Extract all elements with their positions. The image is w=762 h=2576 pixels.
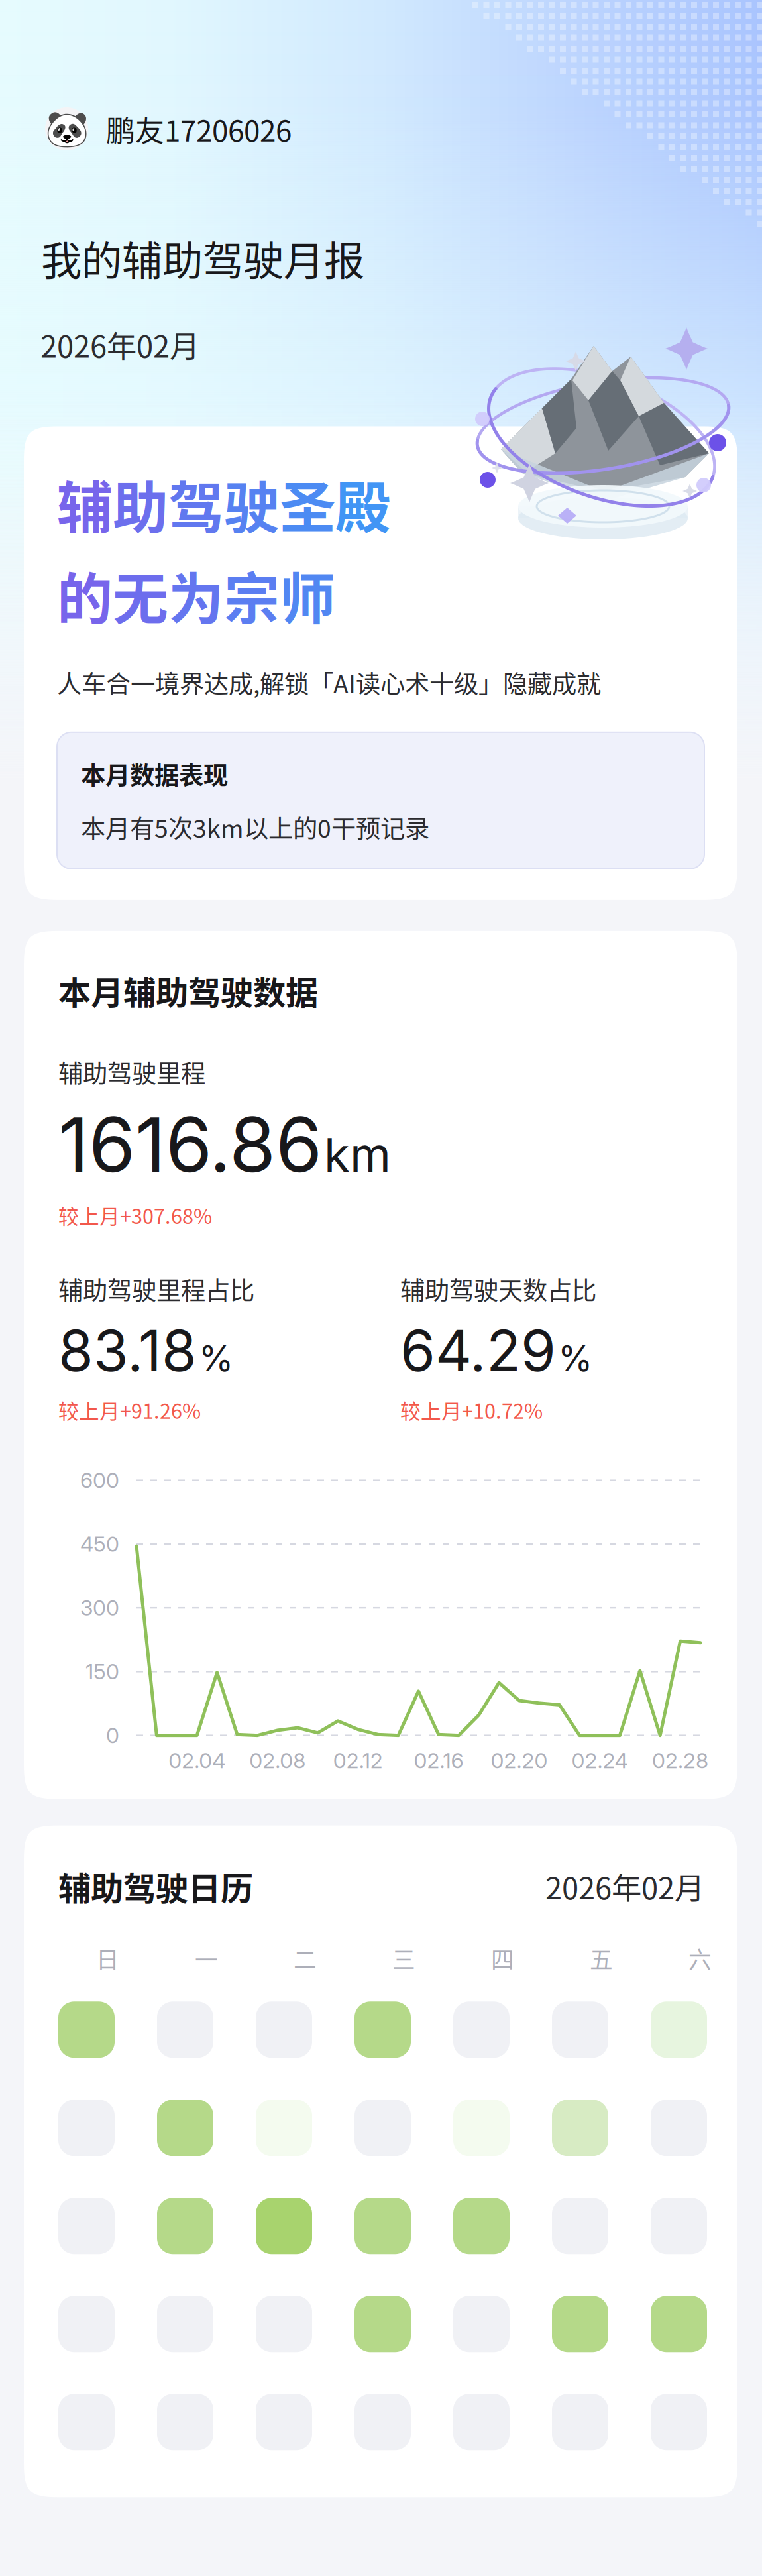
button[interactable]: 🐼 [24, 107, 292, 150]
staticText: 辅 [57, 464, 113, 544]
staticText: 02.08 [249, 1748, 306, 1773]
staticText: km [324, 1126, 391, 1183]
staticText: 鹏友17206026 [106, 108, 292, 150]
staticText: 0 [106, 1723, 119, 1748]
staticText: 驶 [224, 464, 280, 544]
staticText: 本月数据表现 [81, 756, 228, 792]
staticText: 🐼 [45, 108, 88, 150]
staticText: 助 [113, 464, 168, 544]
staticText: 本月辅助驾驶数据 [58, 967, 318, 1014]
staticText: 辅助驾驶里程占比 [58, 1271, 254, 1307]
staticText: 150 [85, 1659, 119, 1684]
staticText: 02.12 [333, 1748, 383, 1773]
staticText: 02.16 [414, 1748, 463, 1773]
staticText: 一 [195, 1942, 218, 1975]
staticText: 300 [80, 1595, 119, 1621]
staticText: 六 [688, 1942, 712, 1975]
staticText: 600 [80, 1467, 119, 1493]
staticText: % [558, 1337, 592, 1379]
staticText: 为 [168, 555, 224, 635]
staticText: 我的辅助驾驶月报 [41, 229, 364, 287]
staticText: 02.28 [652, 1748, 708, 1773]
staticText: 较上月+10.72% [400, 1395, 543, 1425]
staticText: 02.04 [168, 1748, 225, 1773]
staticText: 辅助驾驶天数占比 [400, 1271, 596, 1307]
staticText: 较上月+307.68% [58, 1201, 212, 1230]
staticText: 无 [113, 555, 168, 635]
staticText: 83.18 [58, 1316, 197, 1385]
staticText: 64.29 [400, 1316, 556, 1385]
staticText: 宗 [224, 555, 280, 635]
staticText: 殿 [335, 464, 391, 544]
staticText: % [199, 1337, 233, 1379]
staticText: 1616.86 [58, 1099, 322, 1190]
staticText: 辅助驾驶里程 [58, 1054, 205, 1090]
staticText: 的 [57, 555, 113, 635]
staticText: 二 [294, 1942, 317, 1975]
staticText: 2026年02月 [40, 323, 199, 366]
staticText: 较上月+91.26% [58, 1395, 201, 1425]
staticText: 2026年02月 [545, 1865, 704, 1908]
staticText: 02.20 [491, 1748, 548, 1773]
staticText: 日 [96, 1942, 119, 1975]
staticText: 圣 [280, 464, 335, 544]
staticText: 驾 [168, 464, 224, 544]
staticText: 本月有5次3km以上的0干预记录 [81, 809, 429, 845]
staticText: 02.24 [571, 1748, 628, 1773]
staticText: 师 [280, 555, 335, 635]
staticText: 三 [392, 1942, 415, 1975]
staticText: 450 [80, 1531, 119, 1557]
staticText: 辅助驾驶日历 [58, 1863, 253, 1910]
staticText: 五 [590, 1942, 613, 1975]
staticText: 四 [491, 1942, 514, 1975]
staticText: 人车合一境界达成,解锁「AI读心术十级」隐藏成就 [57, 665, 601, 700]
